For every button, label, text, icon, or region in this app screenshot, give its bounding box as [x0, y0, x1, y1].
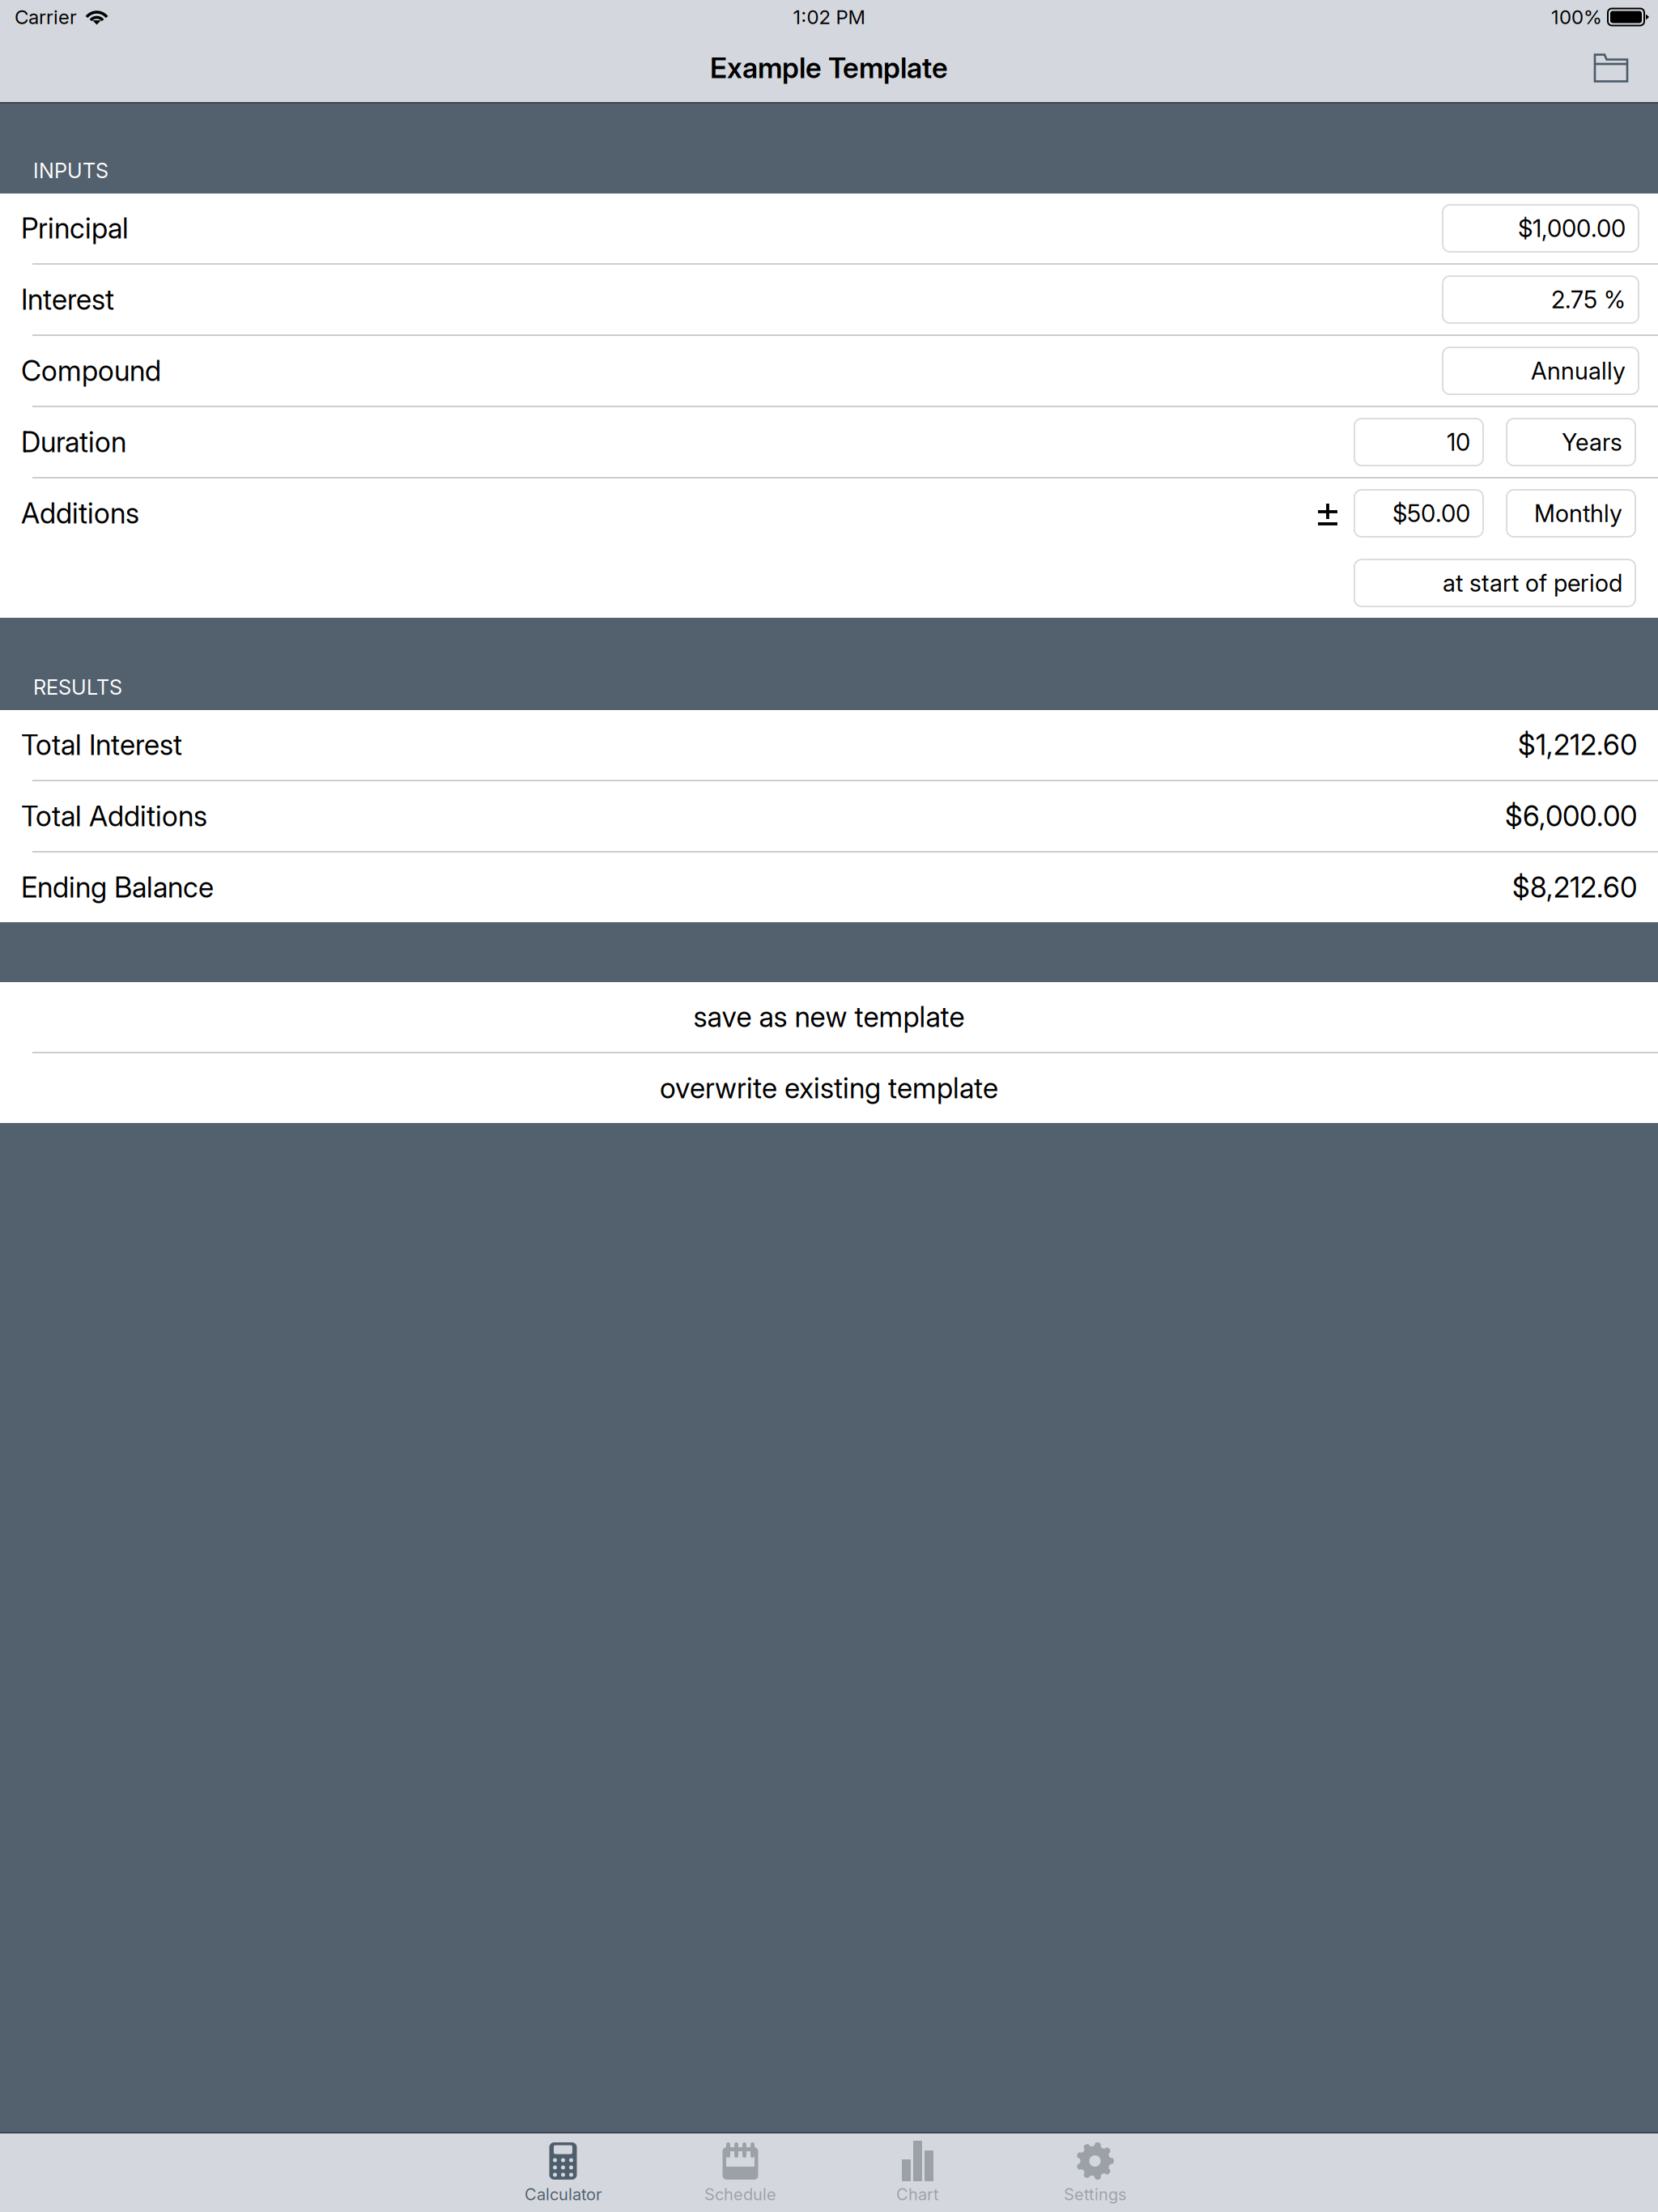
staticText: at start of period: [1443, 569, 1622, 597]
button[interactable]: Total Interest: [0, 710, 1658, 780]
staticText: Example Template: [710, 51, 948, 85]
staticText: 2.75 %: [1551, 285, 1626, 314]
staticText: Carrier: [15, 5, 77, 29]
staticText: $1,212.60: [1518, 728, 1637, 762]
staticText: Total Additions: [21, 799, 207, 833]
button[interactable]: Annually: [1443, 347, 1639, 394]
button[interactable]: Chart: [829, 2133, 1006, 2212]
staticText: Years: [1562, 428, 1622, 456]
staticText: 10: [1447, 428, 1470, 456]
button[interactable]: Years: [1507, 419, 1635, 466]
button[interactable]: Total Additions: [0, 781, 1658, 851]
staticText: INPUTS: [33, 158, 108, 183]
staticText: Chart: [896, 2184, 939, 2204]
staticText: save as new template: [693, 1000, 965, 1034]
staticText: Schedule: [704, 2184, 776, 2204]
staticText: Monthly: [1534, 499, 1622, 528]
button[interactable]: overwrite existing template: [0, 1053, 1658, 1123]
staticText: Ending Balance: [21, 870, 214, 904]
staticText: $6,000.00: [1505, 799, 1637, 833]
button[interactable]: Schedule: [652, 2133, 829, 2212]
staticText: Duration: [21, 425, 126, 459]
staticText: Calculator: [525, 2184, 602, 2204]
staticText: RESULTS: [33, 675, 122, 700]
button[interactable]: Templates: [1575, 34, 1647, 102]
staticText: $50.00: [1392, 499, 1470, 528]
button[interactable]: $1,000.00: [1443, 205, 1639, 252]
button[interactable]: at start of period: [1354, 559, 1635, 606]
staticText: Settings: [1064, 2184, 1126, 2204]
staticText: overwrite existing template: [660, 1071, 998, 1105]
button[interactable]: $50.00: [1354, 490, 1483, 537]
button[interactable]: Settings: [1006, 2133, 1184, 2212]
staticText: Interest: [21, 283, 114, 316]
staticText: $8,212.60: [1512, 870, 1637, 904]
button[interactable]: 2.75 %: [1443, 276, 1639, 323]
button[interactable]: Calculator: [474, 2133, 652, 2212]
staticText: 1:02 PM: [793, 5, 865, 29]
staticText: Additions: [21, 496, 139, 530]
button[interactable]: Ending Balance: [0, 853, 1658, 922]
staticText: Compound: [21, 354, 161, 388]
staticText: Annually: [1531, 356, 1626, 385]
staticText: 100%: [1551, 5, 1602, 29]
button[interactable]: Monthly: [1507, 490, 1635, 537]
button[interactable]: save as new template: [0, 982, 1658, 1052]
staticText: Total Interest: [21, 728, 182, 762]
staticText: Principal: [21, 211, 129, 245]
staticText: $1,000.00: [1518, 214, 1626, 243]
button[interactable]: 10: [1354, 419, 1483, 466]
